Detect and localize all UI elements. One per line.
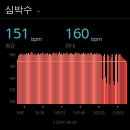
staticText: bpm [31, 35, 42, 42]
staticText: 3:00 [16, 110, 23, 115]
staticText: 최대 [65, 42, 75, 49]
staticText: 1:09:12 [53, 110, 65, 115]
staticText: 120 [9, 87, 15, 92]
staticText: 2:50:01 [112, 110, 124, 115]
staticText: 1:31:49 [73, 110, 85, 115]
staticText: 151 [5, 23, 29, 42]
staticText: 16:36 [35, 110, 44, 115]
staticText: 평균 [5, 42, 15, 49]
staticText: 심박수 [5, 4, 32, 15]
staticText: 160 [9, 64, 15, 69]
staticText: bpm [91, 35, 102, 42]
staticText: 140 [9, 75, 15, 81]
staticText: 2:02:25 [92, 110, 104, 115]
staticText: 160 [65, 23, 89, 42]
staticText: 180 [9, 52, 15, 57]
staticText: 시간(시:분:초) [53, 119, 77, 125]
staticText: 100 [9, 99, 15, 104]
staticText: ⌄ [35, 5, 42, 14]
button[interactable]: 심박수 [0, 0, 130, 18]
